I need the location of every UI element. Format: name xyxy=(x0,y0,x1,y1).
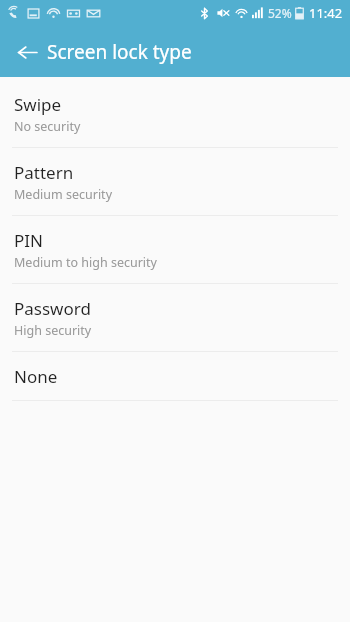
staticText: Password xyxy=(14,297,91,320)
staticText: Pattern xyxy=(14,161,74,184)
staticText: Swipe xyxy=(14,93,62,116)
staticText: No security xyxy=(14,118,81,135)
button[interactable]: Pattern xyxy=(0,148,350,215)
staticText: 52% xyxy=(268,5,292,21)
button[interactable]: Password xyxy=(0,284,350,351)
staticText: Screen lock type xyxy=(47,39,192,65)
button[interactable]: PIN xyxy=(0,216,350,283)
button[interactable]: Back xyxy=(11,36,43,68)
staticText: Medium to high security xyxy=(14,254,157,271)
staticText: Medium security xyxy=(14,186,113,203)
staticText: High security xyxy=(14,322,92,339)
staticText: None xyxy=(14,365,58,388)
button[interactable]: Swipe xyxy=(0,80,350,147)
staticText: PIN xyxy=(14,229,43,252)
staticText: 11:42 xyxy=(309,4,343,22)
button[interactable]: None xyxy=(0,352,350,400)
